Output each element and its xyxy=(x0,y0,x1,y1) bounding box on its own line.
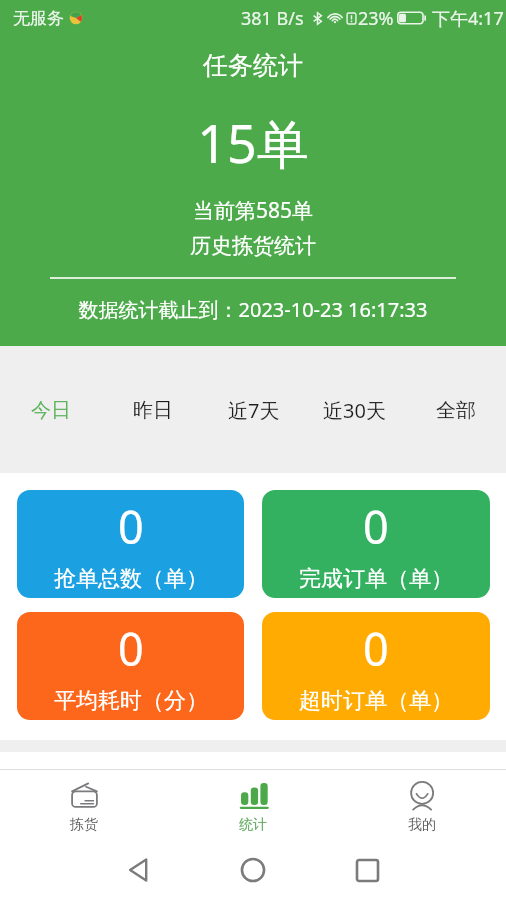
button[interactable]: 0 xyxy=(262,490,490,598)
button[interactable]: Home xyxy=(196,840,310,900)
staticText: 0 xyxy=(363,496,389,557)
button[interactable]: 0 xyxy=(17,490,244,598)
button[interactable]: 全部 xyxy=(405,377,506,443)
button[interactable]: 近30天 xyxy=(304,377,405,443)
staticText: 15单 xyxy=(0,107,506,178)
button[interactable]: 近7天 xyxy=(203,377,304,443)
staticText: 历史拣货统计 xyxy=(0,233,506,259)
staticText: 下午4:17 xyxy=(432,6,504,31)
staticText: 无服务 xyxy=(13,8,64,29)
staticText: 381 B/s xyxy=(241,6,304,31)
button[interactable]: Recents xyxy=(310,840,424,900)
staticText: 0 xyxy=(118,618,144,679)
staticText: 我的 xyxy=(408,816,436,834)
staticText: 完成订单（单） xyxy=(299,565,453,593)
staticText: 超时订单（单） xyxy=(299,687,453,715)
staticText: 任务统计 xyxy=(0,50,506,81)
staticText: 今日 xyxy=(31,398,71,423)
button[interactable]: 0 xyxy=(17,612,244,720)
button[interactable]: Back xyxy=(82,840,196,900)
staticText: 拣货 xyxy=(70,816,98,834)
staticText: 统计 xyxy=(239,816,267,834)
staticText: 0 xyxy=(118,496,144,557)
staticText: 数据统计截止到：2023-10-23 16:17:33 xyxy=(0,296,506,323)
staticText: 昨日 xyxy=(133,398,173,423)
staticText: 平均耗时（分） xyxy=(54,687,208,715)
staticText: 0 xyxy=(363,618,389,679)
button[interactable]: 今日 xyxy=(0,377,102,443)
staticText: 23% xyxy=(358,6,394,31)
staticText: 当前第585单 xyxy=(0,196,506,225)
button[interactable]: 昨日 xyxy=(102,377,203,443)
button[interactable]: 0 xyxy=(262,612,490,720)
staticText: 近30天 xyxy=(323,397,386,424)
button[interactable]: 拣货 xyxy=(0,770,168,840)
button[interactable]: 我的 xyxy=(337,770,506,840)
staticText: 近7天 xyxy=(228,397,280,424)
staticText: 抢单总数（单） xyxy=(54,565,208,593)
staticText: 全部 xyxy=(436,398,476,423)
button[interactable]: 统计 xyxy=(168,770,337,840)
